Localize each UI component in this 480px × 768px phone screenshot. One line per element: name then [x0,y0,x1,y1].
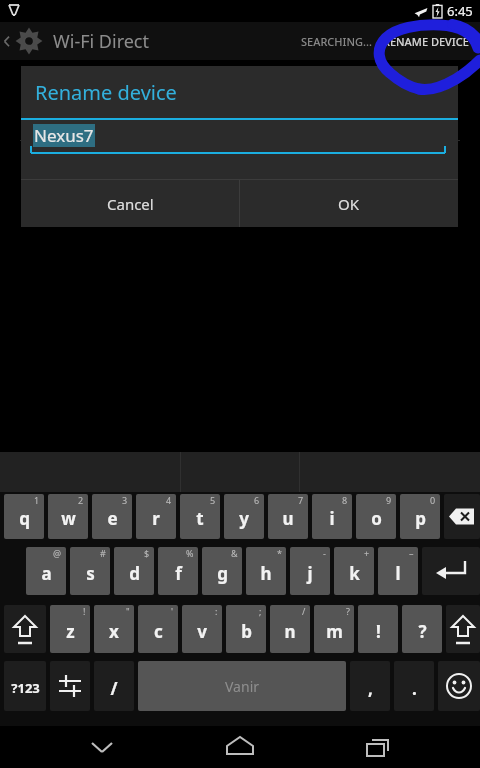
button[interactable]: : [182,605,222,653]
staticText: s [86,562,95,585]
button[interactable]: Keyboard settings [50,661,90,711]
staticText: ? [346,605,350,617]
button[interactable]: 6 [224,494,264,539]
staticText: Wi-Fi Direct [53,29,149,54]
button[interactable]: 4 [136,494,176,539]
staticText: y [239,507,249,530]
staticText: 7 [298,494,304,506]
staticText: 5 [210,494,216,506]
button[interactable]: 5 [180,494,220,539]
button[interactable]: SEARCHING... [296,26,377,57]
button[interactable]: Wi-Fi Direct [2,25,149,57]
button[interactable]: % [158,547,198,595]
button[interactable]: Delete [444,494,480,539]
button[interactable]: Emoji [438,661,480,711]
staticText: 2 [78,494,84,506]
button[interactable]: Enter [422,547,480,595]
staticText: @ [53,547,62,559]
staticText: 3 [122,494,128,506]
staticText: v [197,620,207,643]
button[interactable]: Shift [446,605,480,653]
staticText: 1 [34,494,40,506]
staticText: x [109,620,119,643]
staticText: p [415,507,426,530]
button[interactable]: , [350,661,390,711]
button[interactable]: & [202,547,242,595]
button[interactable]: ! [50,605,90,653]
staticText: 6:45 [447,2,473,20]
staticText: e [107,507,118,530]
button[interactable]: – [378,547,418,595]
staticText: ' [171,605,174,617]
button[interactable]: Cancel [21,180,239,227]
staticText: . [412,677,417,700]
button[interactable]: 9 [356,494,396,539]
staticText: / [110,677,118,700]
button[interactable]: ; [226,605,266,653]
button[interactable]: 8 [312,494,352,539]
staticText: n [284,620,296,643]
staticText: / [302,605,306,617]
staticText: $ [144,547,150,559]
staticText: g [217,562,228,585]
button[interactable]: + [334,547,374,595]
button[interactable]: RENAME DEVICE [377,26,480,57]
button[interactable]: " [94,605,134,653]
staticText: z [66,620,75,643]
staticText: m [326,620,343,643]
button[interactable]: OK [240,180,458,227]
staticText: % [186,547,194,559]
staticText: 0 [430,494,436,506]
staticText: r [152,507,160,530]
button[interactable]: # [70,547,110,595]
staticText: Vanir [225,677,260,696]
button[interactable]: / [94,661,134,711]
button[interactable]: . [394,661,434,711]
staticText: SEARCHING... [301,34,372,49]
button[interactable]: ! [358,605,398,653]
staticText: - [323,547,326,559]
staticText: ?123 [11,679,40,697]
button[interactable]: 0 [400,494,440,539]
button[interactable]: @ [26,547,66,595]
staticText: Nexus7 [34,124,94,147]
button[interactable]: Hide keyboard [66,726,138,768]
staticText: 6 [254,494,260,506]
staticText: i [329,507,335,530]
button[interactable]: 7 [268,494,308,539]
button[interactable]: Home [204,726,276,768]
staticText: ! [83,605,86,617]
staticText: u [282,507,294,530]
button[interactable]: $ [114,547,154,595]
staticText: ? [418,620,427,643]
button[interactable]: 3 [92,494,132,539]
button[interactable]: * [246,547,286,595]
button[interactable]: ' [138,605,178,653]
button[interactable]: ? [402,605,442,653]
button[interactable]: Recent apps [342,726,414,768]
button[interactable]: 1 [4,494,44,539]
staticText: 8 [342,494,348,506]
button[interactable]: 2 [48,494,88,539]
staticText: : [215,605,218,617]
button[interactable]: - [290,547,330,595]
staticText: j [307,562,313,585]
staticText: q [19,507,30,530]
staticText: & [231,547,238,559]
staticText: # [100,547,106,559]
button[interactable]: Space [138,661,346,711]
staticText: – [409,547,414,559]
staticText: Cancel [107,194,154,214]
staticText: b [241,620,252,643]
staticText: 9 [386,494,392,506]
staticText: 4 [166,494,172,506]
button[interactable]: Shift [4,605,46,653]
button[interactable]: ? [314,605,354,653]
button[interactable]: ?123 [4,661,46,711]
staticText: a [41,562,52,585]
button[interactable]: / [270,605,310,653]
staticText: o [371,507,382,530]
